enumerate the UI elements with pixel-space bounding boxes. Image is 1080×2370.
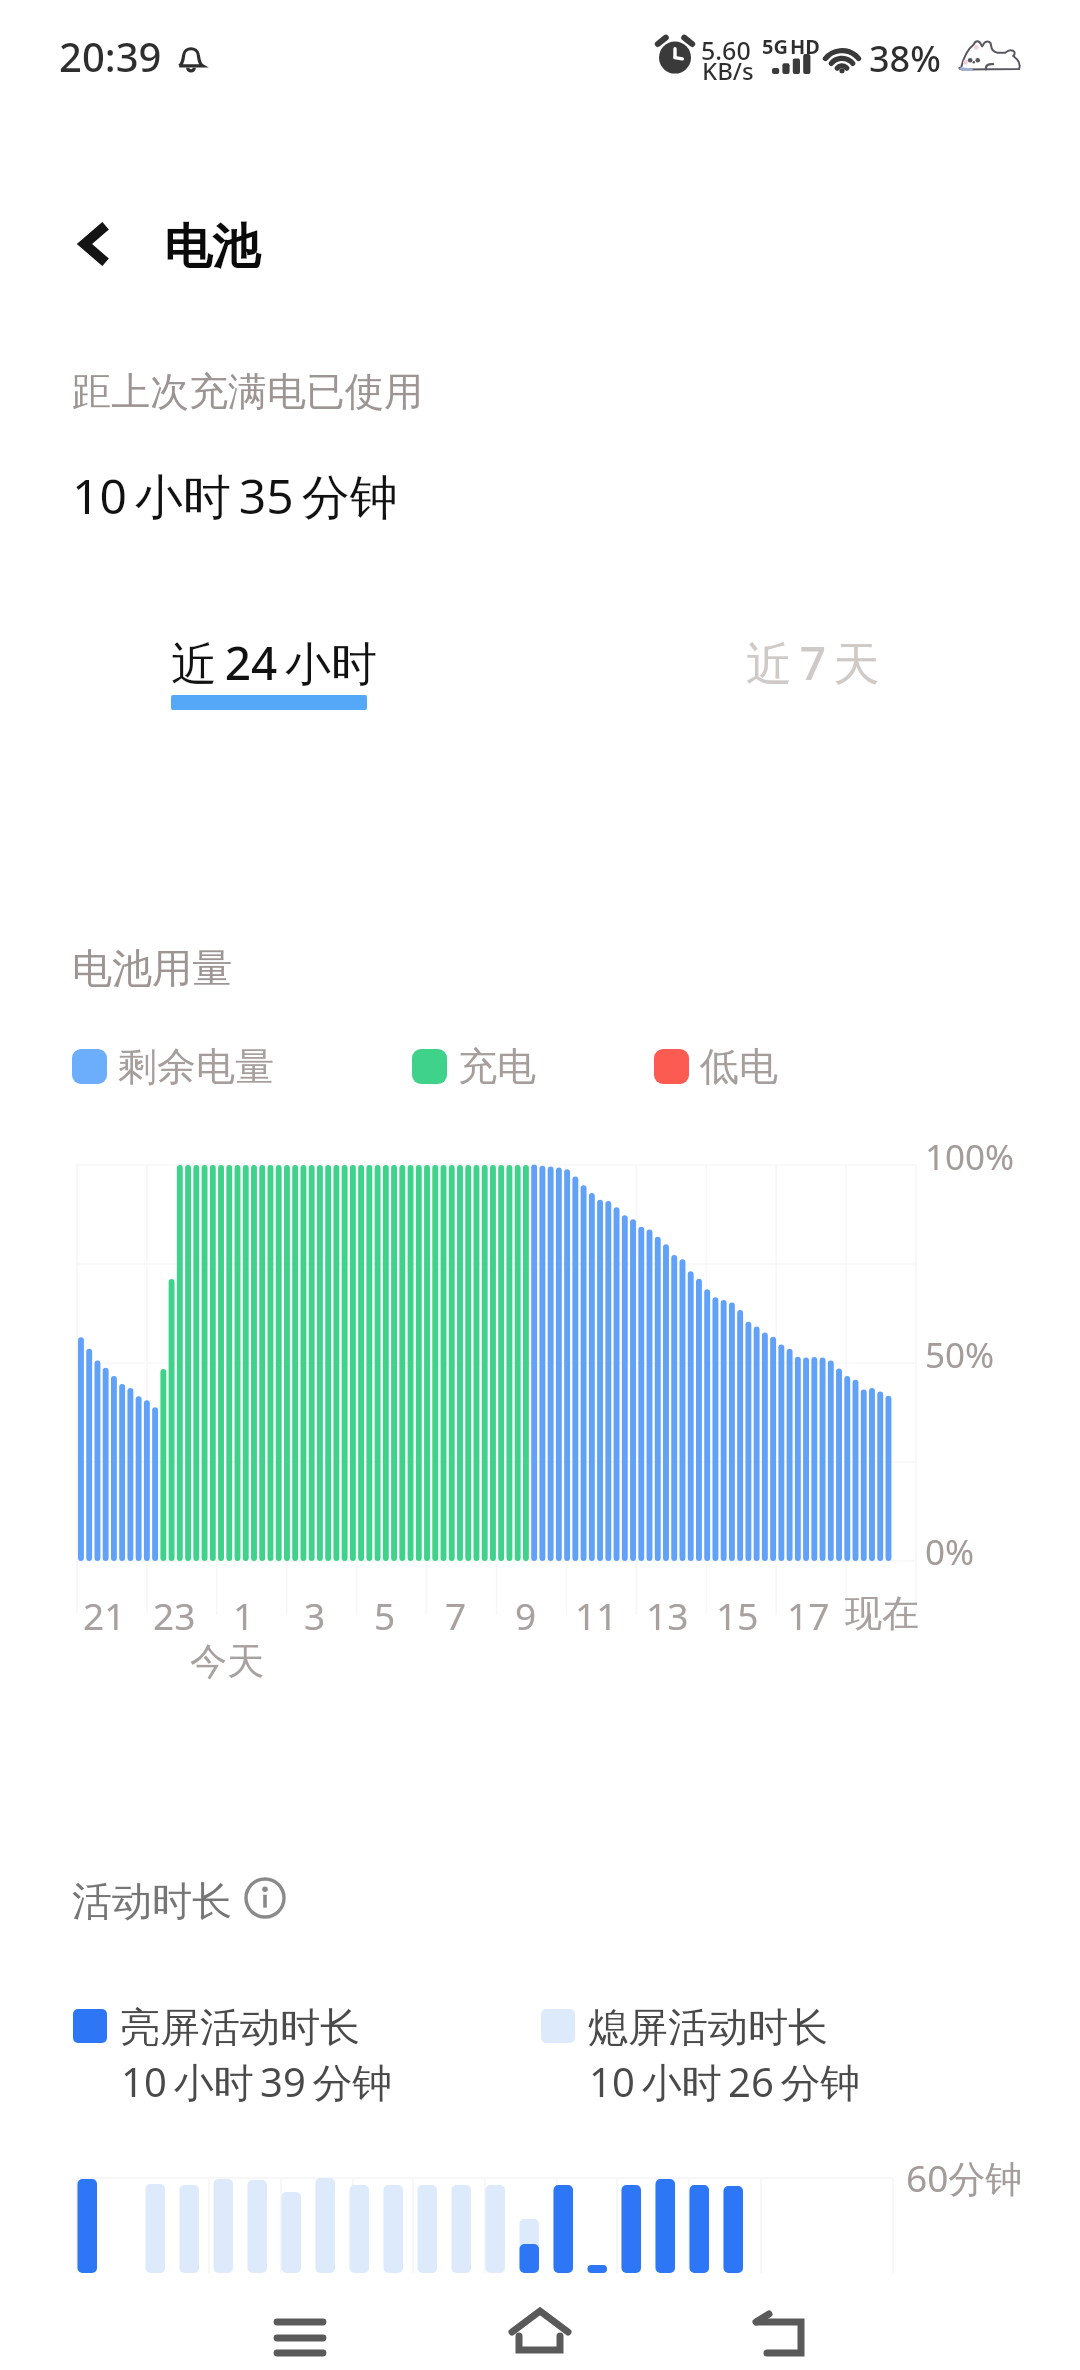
staticText: 电池用量 bbox=[72, 943, 232, 993]
staticText: 距上次充满电已使用 bbox=[72, 367, 423, 416]
staticText: 亮屏活动时长 bbox=[120, 2002, 360, 2052]
staticText: 9 bbox=[515, 1590, 537, 1640]
staticText: 剩余电量 bbox=[118, 1042, 274, 1091]
staticText: 15 bbox=[716, 1590, 759, 1640]
staticText: 近 7 天 bbox=[746, 631, 880, 694]
staticText: 3 bbox=[304, 1590, 326, 1640]
staticText: KB/s bbox=[702, 54, 754, 87]
staticText: 低电 bbox=[700, 1042, 778, 1091]
staticText: 今天 bbox=[190, 1638, 264, 1685]
staticText: HD bbox=[790, 33, 820, 60]
staticText: 10 小时 26 分钟 bbox=[589, 2054, 861, 2109]
staticText: 60分钟 bbox=[906, 2152, 1023, 2203]
staticText: 5 bbox=[374, 1590, 396, 1640]
staticText: 充电 bbox=[458, 1042, 536, 1091]
staticText: 近 24 小时 bbox=[171, 631, 377, 694]
staticText: 21 bbox=[83, 1590, 126, 1640]
staticText: 17 bbox=[787, 1590, 830, 1640]
staticText: 5.60 bbox=[701, 33, 751, 67]
button[interactable]: More info bbox=[243, 1876, 287, 1920]
staticText: 10 小时 39 分钟 bbox=[121, 2054, 393, 2109]
button[interactable]: Recent apps bbox=[240, 2285, 360, 2370]
staticText: 10 小时 35 分钟 bbox=[72, 463, 398, 529]
staticText: 11 bbox=[575, 1590, 618, 1640]
staticText: 0% bbox=[925, 1528, 975, 1576]
staticText: 现在 bbox=[845, 1590, 919, 1637]
button[interactable]: Back bbox=[48, 196, 144, 292]
staticText: 20:39 bbox=[59, 29, 162, 83]
button[interactable]: Home bbox=[480, 2285, 600, 2370]
staticText: 熄屏活动时长 bbox=[588, 2002, 828, 2052]
button[interactable]: Back bbox=[719, 2285, 839, 2370]
button[interactable]: 近 7 天 bbox=[686, 591, 940, 734]
staticText: 5G bbox=[762, 33, 788, 60]
staticText: 7 bbox=[445, 1590, 467, 1640]
button[interactable]: 近 24 小时 bbox=[111, 591, 437, 750]
staticText: 1 bbox=[233, 1590, 255, 1640]
staticText: 23 bbox=[153, 1590, 196, 1640]
staticText: 电池 bbox=[164, 217, 260, 277]
staticText: 活动时长 bbox=[72, 1876, 232, 1926]
staticText: 50% bbox=[925, 1331, 995, 1379]
staticText: 100% bbox=[925, 1133, 1015, 1181]
staticText: 13 bbox=[646, 1590, 689, 1640]
staticText: 38% bbox=[869, 34, 941, 83]
